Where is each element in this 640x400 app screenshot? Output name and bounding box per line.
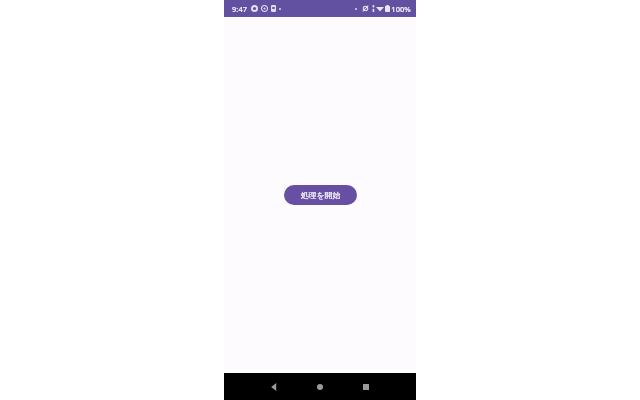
- button[interactable]: Home: [310, 377, 330, 397]
- staticText: 100%: [391, 4, 411, 14]
- staticText: 処理を開始: [300, 190, 341, 200]
- button[interactable]: 処理を開始: [284, 185, 357, 205]
- button[interactable]: Back: [264, 377, 284, 397]
- button[interactable]: Recent apps: [356, 377, 376, 397]
- staticText: 9:47: [232, 4, 247, 14]
